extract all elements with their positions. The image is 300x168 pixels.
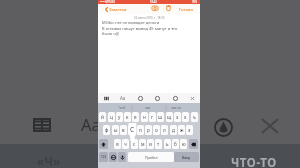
button[interactable]: и <box>147 139 154 149</box>
staticText: Пробел <box>145 155 158 160</box>
staticText: в <box>122 127 125 133</box>
staticText: 76% <box>192 0 198 4</box>
staticText: з <box>176 114 179 120</box>
staticText: г <box>151 114 154 120</box>
button[interactable]: 123 <box>99 152 108 162</box>
button[interactable]: Format <box>137 95 144 102</box>
button[interactable]: а <box>128 125 135 135</box>
button[interactable]: к <box>124 112 131 122</box>
button[interactable]: б <box>172 139 179 149</box>
button[interactable]: Camera <box>154 95 161 102</box>
staticText: Готово <box>179 6 194 12</box>
staticText: ш <box>158 114 163 120</box>
button[interactable]: з <box>174 112 181 122</box>
button[interactable]: о <box>153 125 160 135</box>
staticText: «Ч» <box>37 154 61 168</box>
staticText: ц <box>110 114 113 120</box>
button[interactable]: Ввод <box>174 152 199 162</box>
button[interactable]: Shift <box>99 139 108 149</box>
staticText: й <box>101 114 104 120</box>
staticText: ••••• MTS RU <box>100 0 115 4</box>
button[interactable]: п <box>137 125 144 135</box>
staticText: п <box>139 127 142 133</box>
staticText: ъ <box>193 114 196 120</box>
staticText: Aa <box>120 95 126 101</box>
staticText: ы <box>114 127 118 133</box>
button[interactable]: Close <box>189 95 196 102</box>
button[interactable]: й <box>99 112 106 122</box>
button[interactable]: ы <box>112 125 119 135</box>
button[interactable]: у <box>116 112 123 122</box>
button[interactable]: Camera <box>152 5 158 11</box>
staticText: к <box>126 114 129 120</box>
button[interactable]: ю <box>180 139 187 149</box>
staticText: н <box>143 114 146 120</box>
button[interactable]: ч <box>122 139 129 149</box>
staticText: Заметки <box>109 6 127 12</box>
button[interactable]: х <box>182 112 189 122</box>
staticText: С <box>130 125 135 134</box>
button[interactable]: э <box>186 125 193 135</box>
button[interactable]: что <box>145 106 151 110</box>
button[interactable]: Готово <box>179 4 194 14</box>
button[interactable]: Close <box>262 119 278 133</box>
staticText: ч <box>124 141 127 147</box>
staticText: Ввод <box>182 155 191 160</box>
staticText: щ <box>167 114 172 120</box>
button[interactable]: ь <box>164 139 171 149</box>
staticText: "что" <box>118 106 126 110</box>
button[interactable]: н <box>141 112 148 122</box>
staticText: и <box>149 141 152 147</box>
button[interactable]: Backspace <box>189 139 198 149</box>
button[interactable]: т <box>155 139 162 149</box>
button[interactable]: ф <box>103 125 110 135</box>
button[interactable]: ъ <box>191 112 198 122</box>
button[interactable]: "что" <box>118 106 126 110</box>
staticText: л <box>163 127 166 133</box>
staticText: а <box>130 127 133 133</box>
staticText: ж <box>180 127 184 133</box>
staticText: я <box>116 141 119 147</box>
staticText: что <box>145 106 151 110</box>
staticText: В отзывах пишут вывод 45 минут и это <box>102 26 178 31</box>
button[interactable]: я <box>114 139 121 149</box>
staticText: м <box>141 141 145 147</box>
button[interactable]: Table <box>33 118 51 132</box>
staticText: о <box>155 127 158 133</box>
button[interactable]: что-то <box>171 106 181 110</box>
staticText: с <box>133 141 136 147</box>
button[interactable]: ж <box>178 125 185 135</box>
button[interactable]: Заметки <box>105 4 127 14</box>
staticText: ю <box>182 141 186 147</box>
staticText: э <box>188 127 191 133</box>
staticText: MObic.net не выводит деньги <box>102 20 160 25</box>
staticText: у <box>118 114 121 120</box>
staticText: было ч@ <box>102 31 120 36</box>
button[interactable]: щ <box>166 112 173 122</box>
button[interactable]: л <box>161 125 168 135</box>
staticText: 123 <box>101 155 107 159</box>
button[interactable]: Delete <box>166 5 171 11</box>
staticText: х <box>184 114 187 120</box>
button[interactable]: р <box>145 125 152 135</box>
button[interactable]: с <box>131 139 138 149</box>
button[interactable]: Пробел <box>128 152 174 162</box>
button[interactable]: д <box>170 125 177 135</box>
staticText: 22 июня 2016 г., 18:35 <box>134 16 165 20</box>
button[interactable]: ц <box>108 112 115 122</box>
staticText: т <box>157 141 160 147</box>
button[interactable]: Checklist <box>103 95 110 102</box>
staticText: б <box>174 141 177 147</box>
button[interactable]: Markup <box>214 118 233 137</box>
staticText: д <box>172 127 175 133</box>
button[interactable]: Globe <box>109 152 117 162</box>
button[interactable]: ш <box>157 112 164 122</box>
button[interactable]: Markup <box>172 95 179 102</box>
staticText: 18:42 <box>150 0 157 4</box>
staticText: Aa <box>81 113 101 135</box>
button[interactable]: в <box>120 125 127 135</box>
button[interactable]: г <box>149 112 156 122</box>
button[interactable]: Dictate <box>118 152 126 162</box>
button[interactable]: м <box>139 139 146 149</box>
button[interactable]: е <box>132 112 139 122</box>
